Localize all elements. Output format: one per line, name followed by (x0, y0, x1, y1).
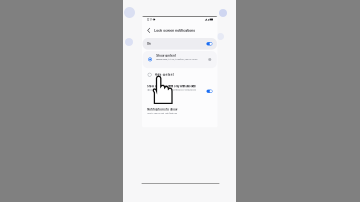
button[interactable]: On (143, 38, 217, 50)
staticText: Alerts and silent notifications (147, 112, 177, 114)
staticText: Show sensitive content only when unlocke… (147, 85, 196, 88)
staticText: Notifications to show (147, 108, 177, 111)
button[interactable]: Show sensitive content only when unlocke… (143, 84, 217, 98)
staticText: Lock screen notifications (154, 28, 195, 32)
staticText: Hide sensitive notification content unti… (147, 88, 196, 91)
button[interactable]: Back (146, 27, 151, 34)
staticText: 12:17 (146, 18, 151, 21)
staticText: Show content (156, 54, 176, 57)
staticText: On (147, 42, 151, 45)
button[interactable]: Notifications to show (143, 106, 217, 116)
button[interactable]: Show content (143, 51, 217, 68)
staticText: Backgrounds, titles, transfers, and so m… (156, 58, 197, 60)
staticText: Hide content (155, 73, 174, 76)
button[interactable]: Hide content (143, 71, 217, 79)
